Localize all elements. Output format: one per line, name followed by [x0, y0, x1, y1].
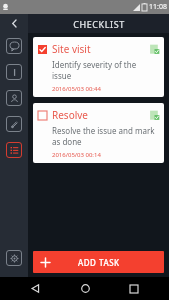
button[interactable]: Attachment	[149, 110, 160, 121]
button[interactable]: Toggle Resolve	[33, 103, 164, 163]
staticText: Resolve	[52, 108, 149, 122]
button[interactable]: Attachment	[149, 44, 160, 55]
button[interactable]: Back	[0, 14, 28, 33]
button[interactable]: Toggle Site visit	[33, 37, 164, 97]
button[interactable]: Contacts	[0, 85, 28, 111]
staticText: Identify severity of the issue	[52, 59, 156, 81]
button[interactable]: Attachments	[0, 111, 28, 137]
button[interactable]: Back	[21, 277, 49, 300]
staticText: 2016/05/03 00:14	[52, 151, 101, 159]
staticText: Resolve the issue and mark as done	[52, 125, 156, 147]
button[interactable]: Recent apps	[120, 277, 148, 300]
button[interactable]: ADD TASK	[33, 251, 164, 273]
staticText: CHECKLIST	[73, 18, 125, 30]
button[interactable]: Messages	[0, 33, 28, 59]
button[interactable]: Home	[71, 277, 99, 300]
staticText: 2016/05/03 00:44	[52, 85, 101, 93]
button[interactable]: Toggle Resolve	[38, 111, 47, 120]
button[interactable]: Settings	[0, 245, 28, 271]
button[interactable]: Notes	[0, 59, 28, 85]
staticText: ADD TASK	[78, 257, 120, 268]
button[interactable]: Toggle Site visit	[38, 45, 47, 54]
staticText: Site visit	[52, 42, 149, 56]
staticText: 11:08	[149, 2, 167, 12]
button[interactable]: Checklist	[0, 137, 28, 163]
